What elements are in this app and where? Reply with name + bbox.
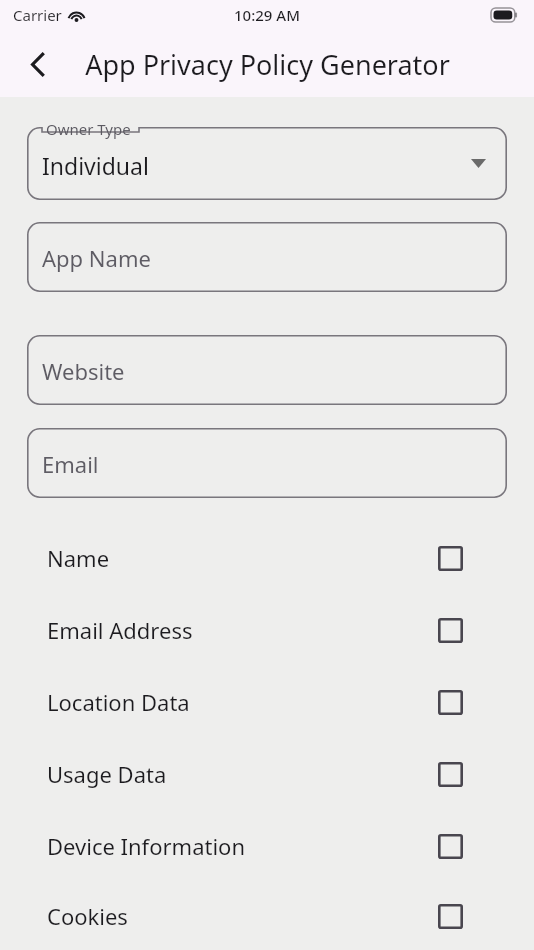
button[interactable]: Name: [0, 522, 534, 594]
staticText: Location Data: [47, 687, 438, 717]
button[interactable]: Website: [27, 335, 507, 405]
staticText: Device Information: [47, 831, 438, 861]
staticText: Individual: [42, 150, 149, 181]
staticText: App Privacy Policy Generator: [85, 46, 450, 83]
button[interactable]: Back: [14, 40, 62, 88]
staticText: Carrier: [13, 5, 62, 25]
button[interactable]: Device Information: [0, 810, 534, 882]
button[interactable]: Location Data: [0, 666, 534, 738]
staticText: Cookies: [47, 901, 438, 931]
staticText: Owner Type: [46, 119, 131, 139]
staticText: Email Address: [47, 615, 438, 645]
staticText: 10:29 AM: [234, 5, 300, 25]
button[interactable]: Cookies: [0, 882, 534, 950]
button[interactable]: App Name: [27, 222, 507, 292]
staticText: Name: [47, 543, 438, 573]
staticText: Website: [42, 356, 125, 386]
staticText: Usage Data: [47, 759, 438, 789]
staticText: Email: [42, 449, 99, 479]
button[interactable]: Usage Data: [0, 738, 534, 810]
button[interactable]: Email Address: [0, 594, 534, 666]
button[interactable]: Owner Type: [27, 127, 507, 200]
button[interactable]: Email: [27, 428, 507, 498]
staticText: App Name: [42, 243, 151, 273]
